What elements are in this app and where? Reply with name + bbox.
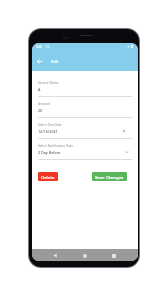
staticText: 12/16/2021 [38,129,58,134]
button[interactable]: Save Changes [92,172,127,181]
staticText: Select Due Date [38,123,62,127]
staticText: Delete [41,174,55,180]
button[interactable]: Recents [109,251,118,260]
staticText: 2 Day Before [38,150,61,155]
staticText: Save Changes [95,174,124,180]
button[interactable]: Back [50,251,59,260]
staticText: 3:31 [36,44,43,49]
staticText: 20 [38,108,43,113]
button[interactable]: Back [33,55,45,67]
staticText: A [38,87,41,92]
button[interactable]: Home [80,251,89,260]
staticText: Amount [38,102,51,106]
button[interactable]: Service Name [38,76,132,97]
button[interactable]: Select Due Date [38,118,132,139]
staticText: Edit [51,59,59,64]
button[interactable]: Select Notification Date [38,139,132,160]
staticText: Service Name [38,81,59,85]
staticText: Select Notification Date [38,144,74,148]
button[interactable]: Amount [38,97,132,118]
button[interactable]: Delete [38,172,58,181]
